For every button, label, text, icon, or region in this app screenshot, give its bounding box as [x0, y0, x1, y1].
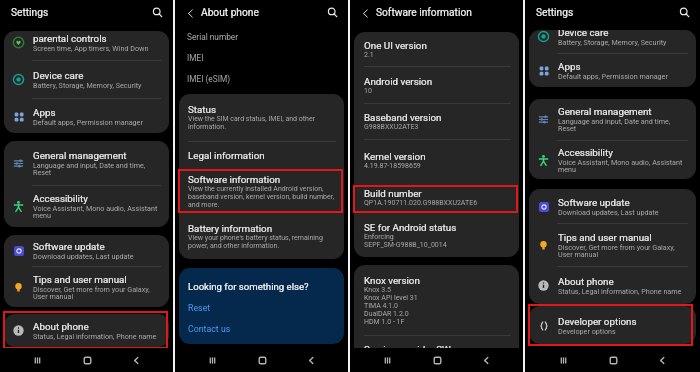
button[interactable]: Back [474, 348, 498, 372]
button[interactable]: Home [601, 348, 625, 372]
button[interactable]: Contact us [188, 324, 231, 334]
staticText: Discover, Get more from your Galaxy, Use… [558, 243, 675, 259]
button[interactable]: Tips and user manual [529, 224, 696, 266]
button[interactable]: Apps [4, 99, 169, 133]
staticText: View the currently installed Android ver… [188, 185, 335, 209]
button[interactable]: Recent apps [25, 348, 49, 372]
button[interactable]: Status [179, 94, 344, 141]
button[interactable]: Accessibility [529, 141, 696, 179]
button[interactable]: Battery information [179, 213, 344, 259]
staticText: Status [188, 104, 217, 115]
staticText: Device care [33, 70, 84, 81]
button[interactable]: Recent apps [200, 348, 224, 372]
staticText: Settings [11, 7, 49, 19]
staticText: Status, Legal information, Phone name [558, 287, 682, 295]
staticText: IMEI (eSIM) [187, 74, 231, 84]
staticText: Settings [536, 7, 574, 19]
staticText: Software update [558, 197, 630, 208]
button[interactable]: Legal information [179, 142, 344, 169]
staticText: Knox 3.5 Knox API level 31 TIMA 4.1.0 Du… [364, 286, 418, 326]
button[interactable]: Reset [188, 303, 211, 313]
button[interactable]: Recent apps [551, 348, 575, 372]
staticText: parental controls [33, 33, 107, 44]
button[interactable]: General management [529, 99, 696, 140]
staticText: View your phone's battery status, remain… [188, 234, 323, 250]
staticText: One UI version [364, 40, 427, 51]
button[interactable]: Knox version [354, 265, 519, 335]
button[interactable]: Device care [4, 61, 169, 98]
staticText: Baseband version [364, 112, 442, 123]
staticText: General management [558, 106, 652, 117]
staticText: Tips and user manual [558, 232, 652, 243]
button[interactable]: Tips and user manual [4, 267, 169, 307]
staticText: Apps [33, 107, 56, 118]
staticText: Screen time, App timers, Wind Down [33, 44, 149, 52]
staticText: Download updates, Last update [33, 252, 134, 260]
staticText: Download updates, Last update [558, 208, 659, 216]
button[interactable]: Home [425, 348, 449, 372]
button[interactable]: parental controls [4, 31, 169, 60]
staticText: Serial number [187, 32, 239, 42]
staticText: IMEI [187, 53, 204, 63]
button[interactable]: Home [250, 348, 274, 372]
button[interactable]: Back [650, 348, 674, 372]
staticText: Default apps, Permission manager [558, 72, 668, 80]
button[interactable]: Service provider SW ver. [354, 336, 519, 362]
staticText: About phone [558, 276, 614, 287]
button[interactable]: General management [4, 141, 169, 185]
staticText: Device care [558, 30, 609, 38]
staticText: Language and input, Date and time, Reset [558, 117, 671, 133]
button[interactable]: Kernel version [354, 140, 519, 181]
staticText: Service provider SW ver. [364, 344, 469, 355]
staticText: View the SIM card status, IMEI, and othe… [188, 115, 316, 131]
staticText: Software information [188, 174, 281, 185]
staticText: QP1A.190711.020.G988BXXU2ATE6 [364, 199, 478, 207]
button[interactable]: Software update [529, 189, 696, 223]
staticText: Kernel version [364, 151, 426, 162]
button[interactable]: Apps [529, 54, 696, 87]
button[interactable]: Recent apps [375, 348, 399, 372]
button[interactable]: Search [325, 5, 340, 20]
staticText: About phone [33, 321, 89, 332]
staticText: Developer options [558, 327, 616, 335]
button[interactable]: Build number [354, 181, 519, 213]
staticText: Voice Assistant, Mono audio, Assistant m… [558, 158, 683, 174]
staticText: Apps [558, 61, 581, 72]
staticText: Knox version [364, 275, 420, 286]
staticText: Legal information [188, 150, 265, 161]
staticText: Discover, Get more from your Galaxy, Use… [33, 285, 150, 301]
button[interactable]: Android version [354, 67, 519, 103]
button[interactable]: Software information [179, 169, 344, 213]
staticText: Tips and user manual [33, 274, 127, 285]
button[interactable]: Home [75, 348, 99, 372]
staticText: Default apps, Permission manager [33, 118, 143, 126]
button[interactable]: Search [150, 5, 165, 20]
staticText: Software update [33, 241, 105, 252]
button[interactable]: Back [299, 348, 323, 372]
button[interactable]: Baseband version [354, 104, 519, 139]
button[interactable]: One UI version [354, 32, 519, 66]
staticText: Build number [364, 188, 422, 199]
staticText: Accessibility [558, 147, 613, 158]
button[interactable]: Back [124, 348, 148, 372]
staticText: Looking for something else? [188, 281, 309, 292]
staticText: Battery, Storage, Memory, Security [33, 81, 142, 89]
button[interactable]: About phone [529, 267, 696, 304]
button[interactable]: Software update [4, 235, 169, 266]
button[interactable]: Search [677, 5, 692, 20]
button[interactable]: About phone [4, 314, 169, 347]
button[interactable]: Accessibility [4, 186, 169, 227]
staticText: Battery information [188, 223, 273, 234]
staticText: Voice Assistant, Mono audio, Assistant m… [33, 204, 158, 220]
staticText: G988BXXU2ATE3 [364, 123, 419, 131]
staticText: Language and input, Date and time, Reset [33, 161, 146, 177]
button[interactable]: Device care [529, 30, 696, 53]
staticText: 4.19.87-18598659 [364, 162, 421, 170]
staticText: Accessibility [33, 193, 88, 204]
staticText: SE for Android status [364, 222, 457, 233]
button[interactable]: Back [183, 6, 197, 20]
staticText: Software information [376, 7, 472, 19]
button[interactable]: Developer options [529, 306, 696, 344]
button[interactable]: Back [358, 6, 372, 20]
button[interactable]: SE for Android status [354, 213, 519, 257]
